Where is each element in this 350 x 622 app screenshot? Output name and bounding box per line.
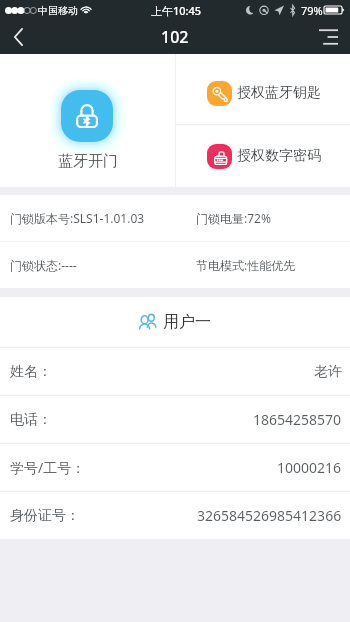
staticText: 门锁状态:----: [10, 257, 196, 273]
staticText: 授权蓝牙钥匙: [237, 84, 321, 102]
button[interactable]: Menu: [319, 20, 338, 54]
staticText: 中国移动: [38, 4, 78, 17]
staticText: 326584526985412366: [197, 506, 342, 525]
staticText: 老许: [314, 363, 342, 381]
staticText: 电话：: [10, 411, 52, 429]
button[interactable]: 姓名：: [0, 348, 350, 395]
staticText: 蓝牙开门: [58, 152, 118, 171]
button[interactable]: 电话：: [0, 396, 350, 443]
staticText: 门锁电量:72%: [196, 210, 271, 226]
button[interactable]: 身份证号：: [0, 492, 350, 539]
staticText: 姓名：: [10, 363, 52, 381]
staticText: 上午10:45: [151, 3, 202, 18]
staticText: 用户一: [163, 312, 211, 332]
staticText: 18654258570: [253, 410, 342, 429]
staticText: 102: [161, 26, 189, 48]
staticText: 授权数字密码: [237, 147, 321, 165]
button[interactable]: 授权数字密码: [176, 125, 350, 187]
button[interactable]: 学号/工号：: [0, 444, 350, 491]
button[interactable]: 蓝牙开门: [0, 54, 175, 187]
button[interactable]: 用户一: [0, 297, 350, 347]
button[interactable]: Back: [0, 20, 36, 54]
staticText: 79%: [301, 3, 323, 18]
staticText: 学号/工号：: [10, 458, 86, 477]
staticText: 身份证号：: [10, 507, 80, 525]
button[interactable]: 授权蓝牙钥匙: [176, 54, 350, 124]
staticText: 节电模式:性能优先: [196, 257, 296, 273]
staticText: 门锁版本号:SLS1-1.01.03: [10, 210, 196, 226]
staticText: 10000216: [277, 458, 342, 477]
